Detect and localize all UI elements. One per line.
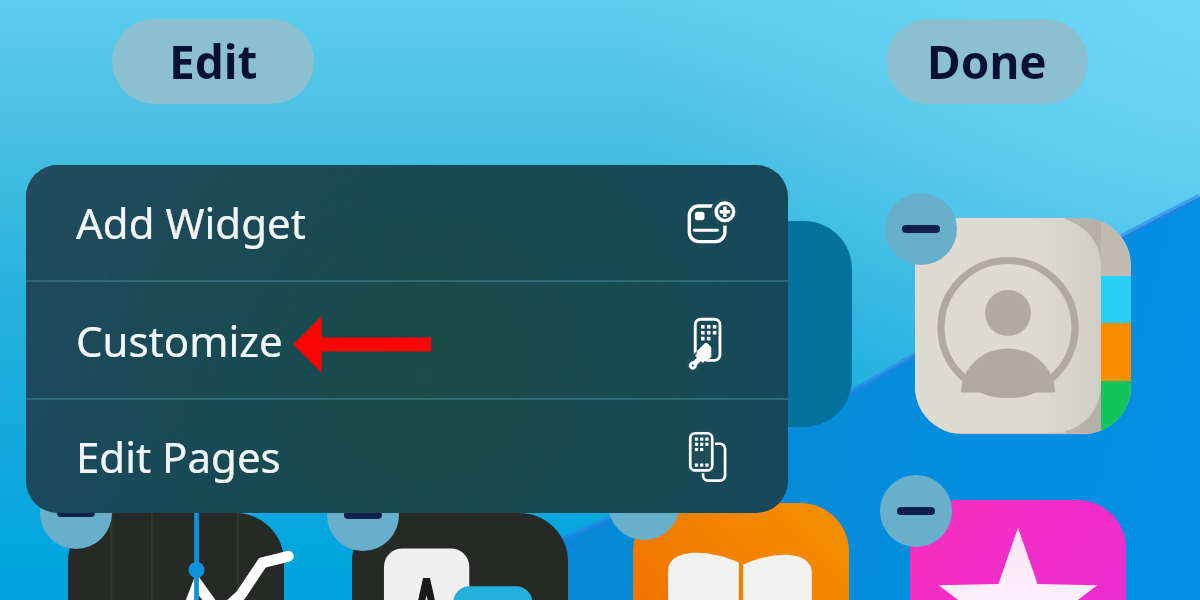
button[interactable]: Add Widget [26, 165, 788, 280]
button[interactable]: App icon [915, 218, 1131, 434]
button[interactable]: Remove app [880, 475, 952, 547]
button[interactable]: Remove app [327, 479, 399, 551]
staticText: Edit Pages [76, 428, 281, 485]
staticText: Edit [169, 30, 258, 93]
button[interactable]: Widget [635, 221, 852, 427]
staticText: Done [927, 30, 1047, 93]
button[interactable]: Customize [26, 282, 788, 398]
staticText: Customize [76, 312, 283, 369]
button[interactable]: Remove app [608, 468, 680, 540]
button[interactable]: Edit Pages [26, 400, 788, 513]
button[interactable]: Remove app [885, 193, 957, 265]
button[interactable]: Remove app [40, 477, 112, 549]
button[interactable]: App icon [910, 500, 1126, 600]
button[interactable]: App icon [633, 503, 849, 600]
button[interactable]: Edit [112, 19, 314, 104]
button[interactable]: App icon [352, 513, 568, 600]
button[interactable]: Done [886, 19, 1088, 104]
staticText: Add Widget [76, 194, 306, 251]
button[interactable]: App icon [68, 513, 284, 600]
